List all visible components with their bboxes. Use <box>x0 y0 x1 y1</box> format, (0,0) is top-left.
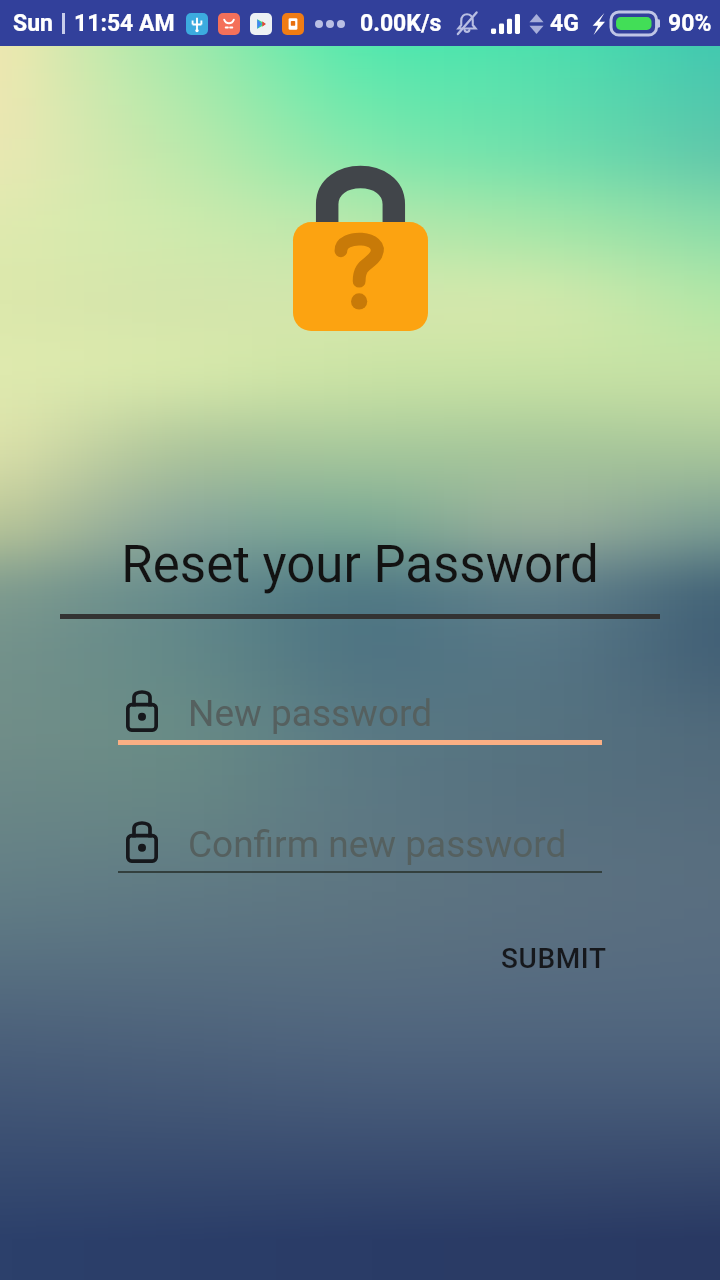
staticText: 4G <box>550 10 579 37</box>
staticText: 11:54 AM <box>74 10 175 37</box>
staticText: SUBMIT <box>501 942 607 975</box>
button[interactable]: SUBMIT <box>479 924 629 993</box>
staticText: Sun <box>13 10 53 37</box>
staticText: Reset your Password <box>0 535 720 595</box>
other: Forgot password lock <box>293 162 428 331</box>
button[interactable]: Confirm new password <box>118 791 602 876</box>
button[interactable]: New password <box>118 660 602 745</box>
staticText: Confirm new password <box>188 823 567 866</box>
staticText: 90% <box>668 10 712 37</box>
staticText: New password <box>188 692 433 735</box>
staticText: 0.00K/s <box>360 10 442 37</box>
